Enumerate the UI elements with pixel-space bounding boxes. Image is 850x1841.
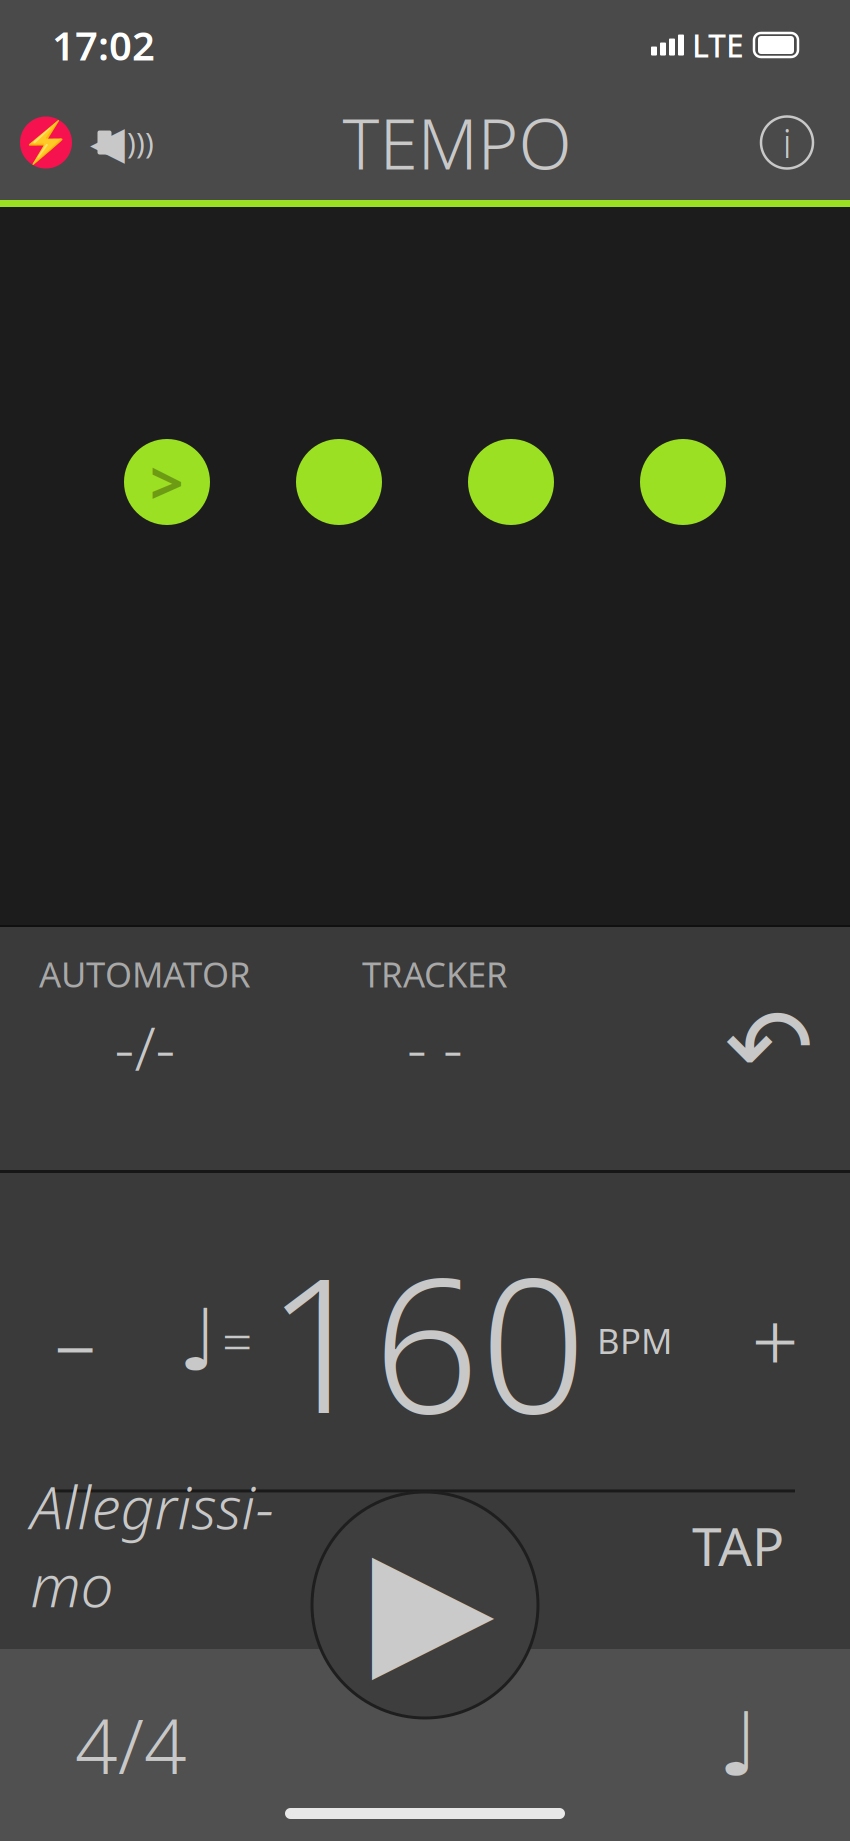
staticText: -/-	[114, 1006, 175, 1088]
staticText: TRACKER	[362, 951, 508, 997]
button[interactable]: -/-	[0, 997, 290, 1097]
staticText: ⚡	[21, 120, 71, 165]
button[interactable]: Allegrissimo	[22, 1500, 282, 1590]
button[interactable]: Note value	[664, 1685, 814, 1805]
button[interactable]: Decrease tempo	[10, 1270, 140, 1410]
button[interactable]: - -	[290, 997, 580, 1097]
button[interactable]: Info	[752, 107, 822, 177]
staticText: ◀	[90, 117, 125, 168]
button[interactable]: 4/4	[36, 1685, 226, 1805]
staticText: 17:02	[52, 18, 155, 71]
staticText: ▶	[371, 1514, 494, 1696]
staticText: Allegrissimo	[30, 1467, 273, 1623]
staticText: ♩	[178, 1292, 218, 1389]
staticText: ♩	[718, 1695, 760, 1795]
button[interactable]: Flash	[16, 112, 76, 172]
button[interactable]: TAP	[648, 1500, 828, 1590]
staticText: BPM	[597, 1317, 672, 1363]
staticText: i	[782, 116, 791, 169]
staticText: - -	[407, 1006, 463, 1088]
staticText: )))	[127, 123, 154, 162]
staticText: –	[54, 1286, 95, 1395]
staticText: 160	[266, 1217, 587, 1464]
staticText: TEMPO	[342, 96, 571, 189]
staticText: LTE	[692, 24, 744, 66]
button[interactable]: Undo	[714, 997, 824, 1097]
staticText: ↶	[724, 986, 813, 1108]
staticText: =	[222, 1305, 252, 1376]
button[interactable]: Increase tempo	[710, 1270, 840, 1410]
staticText: TAP	[692, 1510, 784, 1581]
staticText: +	[751, 1286, 798, 1395]
staticText: 4/4	[75, 1695, 187, 1795]
staticText: AUTOMATOR	[39, 951, 251, 997]
staticText: >	[150, 443, 184, 521]
button[interactable]: Sound	[76, 112, 162, 172]
